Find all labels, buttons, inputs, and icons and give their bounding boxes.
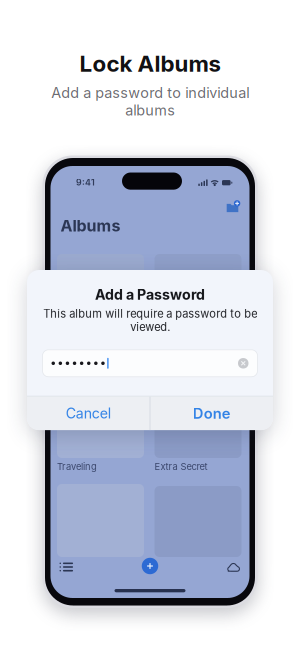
staticText: Albums [60,216,120,235]
button[interactable]: Library [59,558,85,576]
staticText: Traveling [57,461,97,472]
staticText: Cancel [66,405,111,422]
button[interactable]: Add [137,557,163,575]
staticText: Extra Secret [154,461,207,472]
button[interactable]: Cancel [27,397,150,430]
staticText: This album will require a password to be… [43,307,257,334]
button[interactable]: iCloud [213,558,239,576]
staticText: Lock Albums [79,50,220,77]
button[interactable]: Done [150,397,273,430]
staticText: Done [193,404,231,422]
staticText: 9:41 [76,177,95,188]
staticText: Add a Password [95,286,205,303]
staticText: Add a password to individual albums [51,84,249,119]
button[interactable]: New Album [221,198,243,216]
